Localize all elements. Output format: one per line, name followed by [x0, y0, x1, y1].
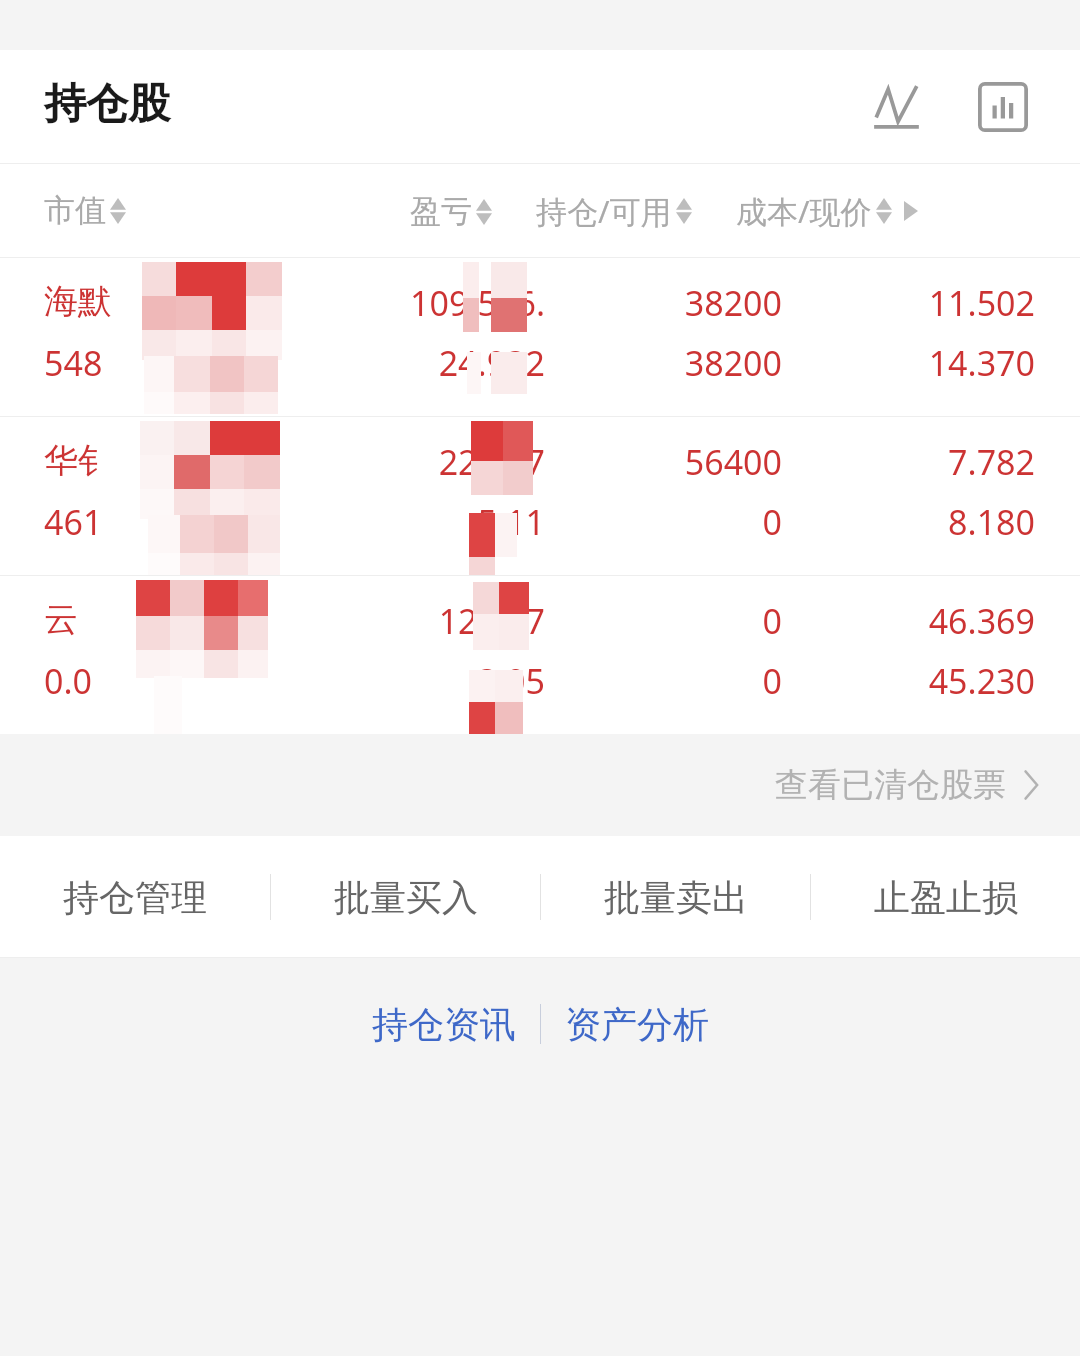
- staticText: 盈亏: [410, 192, 472, 231]
- button[interactable]: 市值: [44, 191, 126, 230]
- staticText: 资产分析: [565, 1002, 709, 1047]
- staticText: 0.0: [44, 658, 93, 704]
- staticText: 华钅: [44, 439, 112, 482]
- button[interactable]: 持仓资讯: [348, 976, 540, 1072]
- staticText: 11.502: [780, 280, 1035, 326]
- button[interactable]: 批量卖出: [541, 836, 810, 958]
- button[interactable]: 海默: [0, 258, 1080, 416]
- staticText: 24.932: [245, 340, 545, 386]
- button[interactable]: 止盈止损: [811, 836, 1080, 958]
- staticText: 批量买入: [334, 875, 478, 920]
- staticText: 56400: [530, 439, 782, 485]
- staticText: 0: [530, 598, 782, 644]
- button[interactable]: 华钅: [0, 417, 1080, 575]
- staticText: 5.11: [245, 499, 545, 545]
- staticText: 45.230: [780, 658, 1035, 704]
- button[interactable]: 持仓/可用: [536, 190, 692, 232]
- staticText: 7.782: [780, 439, 1035, 485]
- staticText: 14.370: [780, 340, 1035, 386]
- button[interactable]: 盈亏: [410, 192, 492, 231]
- staticText: 批量卖出: [604, 875, 748, 920]
- button[interactable]: 批量买入: [271, 836, 540, 958]
- staticText: 8.180: [780, 499, 1035, 545]
- staticText: 548: [44, 340, 103, 386]
- staticText: 云: [44, 598, 78, 641]
- staticText: 持仓/可用: [536, 190, 672, 232]
- staticText: 止盈止损: [874, 875, 1018, 920]
- staticText: 22,467: [245, 439, 545, 485]
- staticText: 0: [530, 499, 782, 545]
- staticText: 持仓管理: [63, 875, 207, 920]
- button[interactable]: Line chart: [858, 68, 936, 146]
- staticText: 46.369: [780, 598, 1035, 644]
- button[interactable]: 资产分析: [541, 976, 733, 1072]
- staticText: 3.05: [245, 658, 545, 704]
- button[interactable]: 持仓管理: [0, 836, 270, 958]
- staticText: 海默: [44, 280, 112, 323]
- staticText: 市值: [44, 191, 106, 230]
- staticText: 38200: [530, 340, 782, 386]
- staticText: 查看已清仓股票: [775, 764, 1006, 806]
- staticText: 持仓股: [44, 78, 170, 131]
- staticText: 38200: [530, 280, 782, 326]
- button[interactable]: 查看已清仓股票: [0, 734, 1080, 836]
- button[interactable]: 云: [0, 576, 1080, 734]
- staticText: 12,897: [245, 598, 545, 644]
- button[interactable]: Bar chart: [964, 68, 1042, 146]
- staticText: 109,546.: [245, 280, 545, 326]
- button[interactable]: 成本/现价: [736, 190, 918, 232]
- staticText: 461: [44, 499, 103, 545]
- staticText: 成本/现价: [736, 190, 872, 232]
- staticText: 0: [530, 658, 782, 704]
- staticText: 持仓资讯: [372, 1002, 516, 1047]
